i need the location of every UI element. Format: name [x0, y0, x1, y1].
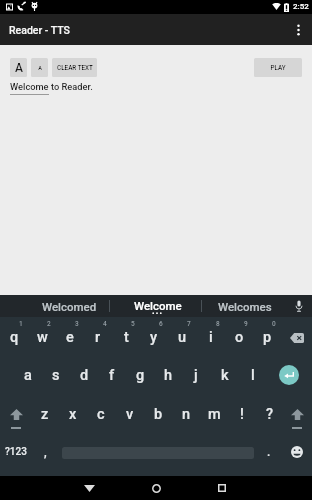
staticText: o: [235, 329, 244, 346]
button[interactable]: Emoji: [283, 433, 311, 470]
staticText: e: [66, 329, 74, 346]
button[interactable]: ?: [256, 396, 284, 433]
staticText: ,: [44, 445, 47, 459]
button[interactable]: More options: [284, 14, 312, 45]
staticText: PLAY: [270, 64, 286, 71]
button[interactable]: Voice input: [286, 295, 312, 317]
button[interactable]: ?123: [2, 433, 30, 470]
button[interactable]: v: [116, 396, 144, 433]
button[interactable]: s: [42, 357, 70, 394]
staticText: A: [38, 65, 42, 71]
staticText: 4: [103, 320, 107, 328]
staticText: 1: [19, 320, 23, 328]
staticText: f: [109, 367, 115, 384]
staticText: 2:52: [293, 2, 309, 11]
button[interactable]: h: [154, 357, 182, 394]
button[interactable]: !: [228, 396, 256, 433]
staticText: y: [150, 329, 158, 346]
button[interactable]: z: [31, 396, 59, 433]
button[interactable]: Back: [66, 476, 112, 500]
button[interactable]: q: [0, 319, 28, 356]
staticText: Welcomes: [218, 300, 272, 313]
staticText: i: [209, 329, 213, 346]
button[interactable]: Shift: [283, 396, 311, 433]
button[interactable]: PLAY: [254, 58, 302, 77]
button[interactable]: m: [200, 396, 228, 433]
button[interactable]: CLEAR TEXT: [52, 58, 97, 77]
button[interactable]: a: [14, 357, 42, 394]
staticText: 0: [272, 320, 276, 328]
button[interactable]: Recent apps: [199, 476, 245, 500]
staticText: g: [136, 367, 145, 384]
staticText: 7: [187, 320, 191, 328]
button[interactable]: ,: [31, 433, 59, 470]
staticText: 5: [131, 320, 135, 328]
button[interactable]: u: [168, 319, 196, 356]
staticText: A: [15, 61, 23, 75]
button[interactable]: c: [87, 396, 115, 433]
staticText: 3: [75, 320, 79, 328]
staticText: w: [37, 329, 48, 346]
staticText: 9: [244, 320, 248, 328]
button[interactable]: Enter: [279, 365, 299, 385]
button[interactable]: o: [225, 319, 253, 356]
button[interactable]: Home: [133, 476, 179, 500]
staticText: v: [126, 406, 134, 423]
staticText: s: [52, 367, 60, 384]
staticText: k: [221, 367, 229, 384]
staticText: b: [154, 406, 163, 423]
button[interactable]: x: [59, 396, 87, 433]
staticText: ?123: [5, 446, 27, 458]
staticText: .: [267, 445, 271, 459]
button[interactable]: p: [253, 319, 281, 356]
staticText: CLEAR TEXT: [57, 64, 93, 71]
staticText: ?: [266, 406, 274, 423]
button[interactable]: A: [31, 58, 48, 77]
staticText: h: [164, 367, 173, 384]
button[interactable]: e: [56, 319, 84, 356]
button[interactable]: Welcome: [110, 295, 201, 317]
staticText: Welcome: [134, 299, 182, 312]
staticText: Welcome to Reader.: [10, 81, 93, 92]
staticText: 6: [159, 320, 163, 328]
staticText: z: [41, 406, 49, 423]
button[interactable]: t: [112, 319, 140, 356]
staticText: m: [208, 406, 221, 423]
button[interactable]: d: [70, 357, 98, 394]
button[interactable]: r: [84, 319, 112, 356]
button[interactable]: .: [255, 433, 283, 470]
button[interactable]: Shift: [2, 396, 30, 433]
staticText: l: [251, 367, 255, 384]
button[interactable]: Backspace: [283, 319, 311, 356]
button[interactable]: g: [126, 357, 154, 394]
staticText: r: [95, 329, 101, 346]
button[interactable]: A: [10, 58, 27, 77]
button[interactable]: i: [197, 319, 225, 356]
button[interactable]: n: [172, 396, 200, 433]
staticText: x: [69, 406, 77, 423]
staticText: p: [263, 329, 272, 346]
button[interactable]: l: [239, 357, 267, 394]
staticText: c: [97, 406, 105, 423]
staticText: !: [240, 406, 244, 423]
button[interactable]: b: [144, 396, 172, 433]
staticText: a: [24, 367, 32, 384]
staticText: 8: [216, 320, 220, 328]
staticText: Reader - TTS: [9, 24, 70, 36]
button[interactable]: Welcomed: [0, 295, 109, 317]
staticText: u: [178, 329, 187, 346]
staticText: q: [10, 329, 19, 346]
button[interactable]: Welcomes: [202, 295, 286, 317]
staticText: 2: [47, 320, 51, 328]
staticText: d: [80, 367, 89, 384]
button[interactable]: k: [211, 357, 239, 394]
staticText: Welcomed: [42, 300, 97, 313]
staticText: j: [194, 367, 198, 384]
staticText: t: [124, 329, 129, 346]
button[interactable]: j: [182, 357, 210, 394]
button[interactable]: y: [140, 319, 168, 356]
button[interactable]: f: [98, 357, 126, 394]
button[interactable]: w: [28, 319, 56, 356]
staticText: n: [182, 406, 191, 423]
